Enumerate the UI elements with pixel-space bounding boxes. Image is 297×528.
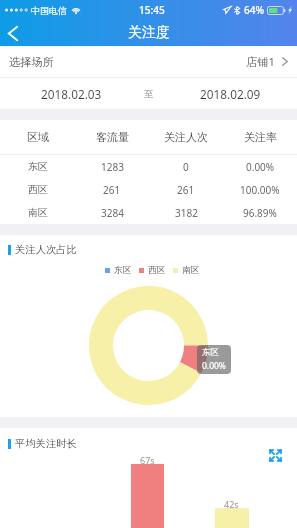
staticText: 南区 xyxy=(28,206,48,219)
staticText: 0.00% xyxy=(246,160,275,174)
staticText: 67s xyxy=(140,454,155,466)
staticText: 100.00% xyxy=(240,183,280,197)
button[interactable]: 2018.02.03 xyxy=(30,78,113,109)
staticText: 东区 xyxy=(28,160,48,173)
staticText: 3284 xyxy=(101,206,124,220)
staticText: 261 xyxy=(103,183,121,197)
staticText: 关注率 xyxy=(244,130,277,144)
staticText: 东区 xyxy=(202,347,219,358)
staticText: 96.89% xyxy=(243,206,277,220)
staticText: 区域 xyxy=(27,130,49,144)
staticText: 64% xyxy=(244,3,264,17)
staticText: 关注度 xyxy=(128,24,170,42)
staticText: 选择场所 xyxy=(9,55,54,69)
staticText: 1283 xyxy=(101,160,124,174)
staticText: 西区 xyxy=(148,265,166,276)
staticText: 0 xyxy=(183,160,189,174)
button[interactable]: Back xyxy=(0,20,26,46)
staticText: 店铺1 xyxy=(246,54,275,69)
staticText: 平均关注时长 xyxy=(15,437,77,450)
staticText: 关注人次占比 xyxy=(15,243,77,256)
staticText: 至 xyxy=(144,88,154,100)
staticText: 东区 xyxy=(114,265,132,276)
staticText: 关注人次 xyxy=(164,130,208,144)
button[interactable]: Fullscreen xyxy=(269,449,282,462)
staticText: 2018.02.03 xyxy=(41,86,102,102)
staticText: 西区 xyxy=(28,183,48,196)
staticText: 261 xyxy=(177,183,195,197)
staticText: 中国电信 xyxy=(31,5,67,16)
button[interactable]: 选择场所 xyxy=(0,46,297,77)
button[interactable]: 2018.02.09 xyxy=(188,78,272,109)
staticText: 15:45 xyxy=(139,3,165,17)
staticText: 3182 xyxy=(175,206,198,220)
staticText: 客流量 xyxy=(96,130,129,144)
staticText: 2018.02.09 xyxy=(200,86,261,102)
staticText: 0.00% xyxy=(202,360,226,372)
staticText: 42s xyxy=(224,498,239,510)
staticText: 南区 xyxy=(182,265,200,276)
